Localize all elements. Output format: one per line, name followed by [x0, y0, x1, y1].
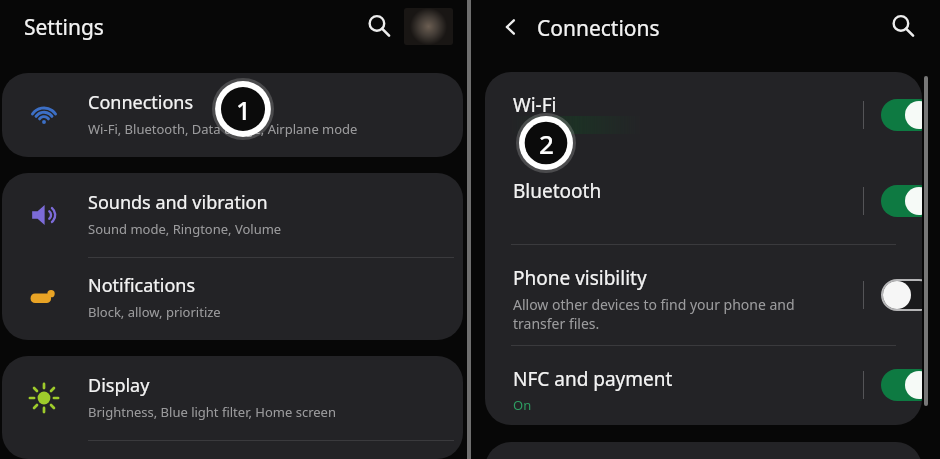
button[interactable]: NFC and payment, on	[881, 369, 922, 401]
button[interactable]: Profile	[404, 8, 453, 45]
staticText: NFC and payment	[513, 366, 673, 392]
staticText: Bluetooth	[513, 178, 602, 204]
button[interactable]: Sounds and vibration	[2, 173, 463, 257]
button[interactable]: Back	[492, 8, 530, 46]
staticText: Sounds and vibration	[88, 190, 268, 215]
button[interactable]: Wi-Fi, on	[881, 99, 922, 131]
staticText: Brightness, Blue light filter, Home scre…	[88, 403, 336, 421]
button[interactable]: Bluetooth	[485, 158, 922, 244]
staticText: Connections	[537, 14, 660, 43]
staticText: On	[513, 396, 532, 414]
button[interactable]: NFC and payment	[485, 346, 922, 425]
button[interactable]: Connections	[2, 73, 463, 157]
button[interactable]: Wi-Fi	[485, 72, 922, 158]
button[interactable]: Display	[2, 356, 463, 440]
staticText: 2	[539, 126, 554, 161]
button[interactable]: Phone visibility	[485, 245, 922, 345]
staticText: Allow other devices to find your phone a…	[513, 295, 795, 333]
staticText: Settings	[24, 13, 104, 42]
staticText: Block, allow, prioritize	[88, 303, 221, 321]
button[interactable]: Search	[360, 7, 398, 45]
button[interactable]: Notifications	[2, 257, 463, 340]
button[interactable]: Phone visibility, off	[881, 279, 922, 311]
staticText: Display	[88, 373, 150, 398]
staticText: Notifications	[88, 273, 196, 298]
button[interactable]: Search	[884, 7, 922, 45]
staticText: 1	[236, 92, 251, 127]
staticText: Phone visibility	[513, 265, 647, 291]
staticText: Connections	[88, 90, 194, 115]
staticText: Wi-Fi	[513, 92, 557, 118]
button[interactable]: Bluetooth, on	[881, 185, 922, 217]
staticText: Wi-Fi, Bluetooth, Data usage, Airplane m…	[88, 120, 358, 138]
staticText: Sound mode, Ringtone, Volume	[88, 220, 282, 238]
